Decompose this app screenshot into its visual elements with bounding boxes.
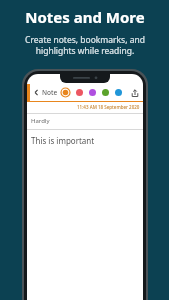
button[interactable]: Purple highlight	[89, 89, 96, 96]
button[interactable]: Orange highlight	[61, 88, 70, 97]
staticText: Hardly	[31, 117, 50, 125]
staticText: Note	[42, 88, 58, 97]
button[interactable]: Green highlight	[102, 89, 109, 96]
button[interactable]: Back	[32, 88, 41, 97]
staticText: 11:43 AM 18 September 2020	[77, 104, 140, 110]
button[interactable]: Red highlight	[76, 89, 83, 96]
button[interactable]: Note	[42, 88, 58, 97]
staticText: Notes and More	[25, 7, 145, 27]
button[interactable]: Share	[130, 88, 140, 98]
staticText: Create notes, bookmarks, and highlights …	[25, 34, 145, 56]
staticText: This is important	[31, 135, 95, 146]
button[interactable]: Blue highlight	[115, 89, 122, 96]
